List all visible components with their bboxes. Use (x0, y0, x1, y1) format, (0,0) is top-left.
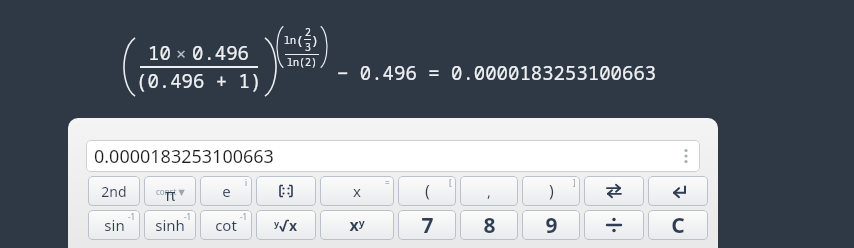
staticText: -1 (184, 211, 192, 222)
button[interactable]: 9 (522, 210, 580, 240)
button[interactable]: Divide (584, 210, 644, 240)
staticText: x (289, 216, 298, 235)
staticText: 2 (305, 25, 311, 39)
staticText: 0.0000183253100663 (94, 144, 672, 169)
button[interactable]: Matrix (256, 176, 316, 206)
staticText: e (222, 181, 231, 201)
staticText: 7 (421, 211, 434, 240)
button[interactable]: y-th root of x (256, 210, 316, 240)
staticText: x (353, 181, 361, 201)
staticText: cot (215, 215, 237, 235)
button[interactable]: , (460, 176, 518, 206)
staticText: × (176, 42, 187, 65)
staticText: const ▼ (156, 186, 185, 197)
staticText: sinh (155, 215, 185, 235)
button[interactable]: xʸ (320, 210, 394, 240)
staticText: y (274, 217, 280, 229)
staticText: i (245, 177, 248, 188)
staticText: 10 (148, 40, 171, 66)
button[interactable]: Enter (648, 176, 708, 206)
button[interactable]: const ▼ (144, 176, 196, 206)
button[interactable]: -1 (144, 210, 196, 240)
button[interactable]: More options (672, 140, 700, 172)
button[interactable]: 8 (460, 210, 518, 240)
button[interactable]: 0.0000183253100663 (86, 140, 700, 172)
staticText: − 0.496 = 0.0000183253100663 (337, 60, 657, 86)
staticText: ) (549, 180, 554, 202)
button[interactable]: i (200, 176, 252, 206)
button[interactable]: 7 (398, 210, 456, 240)
staticText: ] (573, 177, 576, 188)
staticText: π (165, 184, 176, 206)
staticText: ( (296, 31, 304, 49)
staticText: xʸ (349, 214, 365, 236)
staticText: 0.496 (192, 40, 250, 66)
staticText: C (671, 211, 685, 240)
staticText: ln(2) (287, 55, 317, 69)
button[interactable]: Swap (584, 176, 644, 206)
button[interactable]: -1 (200, 210, 252, 240)
staticText: -1 (128, 211, 136, 222)
staticText: -1 (240, 211, 248, 222)
button[interactable]: 2nd (88, 176, 140, 206)
staticText: 9 (545, 211, 558, 240)
staticText: 8 (483, 211, 496, 240)
staticText: (0.496 + 1) (136, 68, 262, 94)
button[interactable]: -1 (88, 210, 140, 240)
staticText: , (487, 182, 491, 201)
staticText: sin (104, 215, 125, 235)
staticText: ln (284, 33, 296, 47)
button[interactable]: C (648, 210, 708, 240)
staticText: ( (425, 180, 430, 202)
staticText: ) (311, 31, 319, 49)
staticText: = (385, 177, 390, 188)
button[interactable]: ] (522, 176, 580, 206)
button[interactable]: [ (398, 176, 456, 206)
staticText: 3 (305, 40, 311, 54)
button[interactable]: = (320, 176, 394, 206)
staticText: 2nd (101, 182, 127, 201)
staticText: [ (449, 177, 452, 188)
